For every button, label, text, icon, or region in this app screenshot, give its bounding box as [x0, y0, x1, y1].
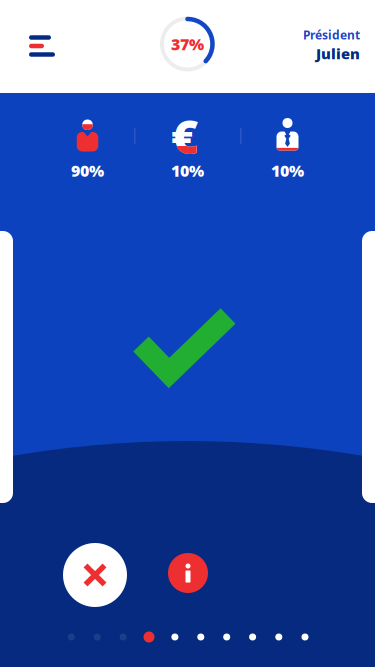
staticText: €: [171, 105, 198, 167]
button[interactable]: Information: [168, 553, 208, 593]
staticText: 10%: [171, 160, 204, 181]
staticText: Julien: [316, 44, 360, 63]
staticText: 37%: [171, 33, 204, 55]
staticText: €: [171, 105, 198, 167]
staticText: 90%: [71, 160, 104, 181]
button[interactable]: Reject: [63, 543, 127, 607]
button[interactable]: Profile Julien: [240, 27, 360, 63]
button[interactable]: Menu: [15, 21, 69, 71]
staticText: 10%: [271, 160, 304, 181]
staticText: Président: [303, 27, 360, 43]
